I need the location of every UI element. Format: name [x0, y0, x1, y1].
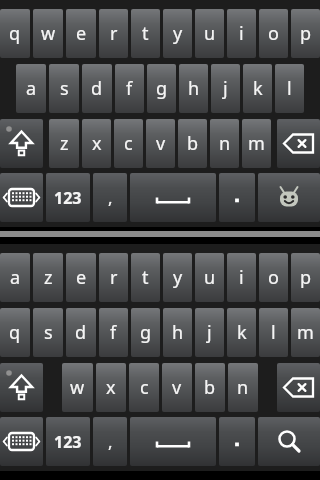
staticText: h: [188, 76, 200, 101]
staticText: y: [173, 265, 183, 290]
staticText: m: [248, 131, 265, 156]
button[interactable]: g: [131, 308, 160, 357]
button[interactable]: w: [62, 363, 93, 412]
button[interactable]: s: [33, 308, 63, 357]
button[interactable]: u: [195, 253, 224, 302]
button[interactable]: Shift: [0, 363, 43, 412]
button[interactable]: z: [49, 119, 79, 168]
button[interactable]: t: [131, 9, 160, 58]
button[interactable]: 123: [46, 173, 90, 222]
button[interactable]: ,: [93, 173, 127, 222]
button[interactable]: v: [146, 119, 175, 168]
staticText: d: [91, 76, 103, 101]
staticText: x: [106, 375, 116, 400]
button[interactable]: h: [179, 64, 208, 113]
staticText: 123: [54, 187, 82, 209]
button[interactable]: x: [82, 119, 111, 168]
staticText: a: [26, 76, 37, 101]
button[interactable]: y: [163, 253, 192, 302]
staticText: f: [126, 76, 133, 101]
button[interactable]: 123: [46, 417, 90, 466]
button[interactable]: c: [129, 363, 159, 412]
staticText: y: [173, 21, 183, 46]
button[interactable]: v: [162, 363, 192, 412]
button[interactable]: Emoji: [258, 173, 320, 222]
button[interactable]: e: [66, 253, 96, 302]
button[interactable]: o: [259, 253, 288, 302]
button[interactable]: m: [242, 119, 271, 168]
button[interactable]: n: [228, 363, 258, 412]
button[interactable]: d: [82, 64, 112, 113]
staticText: v: [172, 375, 182, 400]
staticText: p: [300, 265, 312, 290]
button[interactable]: k: [243, 64, 272, 113]
button[interactable]: q: [0, 308, 30, 357]
button[interactable]: b: [178, 119, 207, 168]
button[interactable]: l: [259, 308, 288, 357]
button[interactable]: Period: [219, 173, 255, 222]
button[interactable]: n: [210, 119, 239, 168]
staticText: e: [76, 265, 87, 290]
button[interactable]: Backspace: [277, 363, 320, 412]
staticText: o: [268, 265, 279, 290]
button[interactable]: s: [49, 64, 79, 113]
staticText: j: [207, 320, 212, 345]
button[interactable]: Period: [219, 417, 255, 466]
button[interactable]: o: [259, 9, 288, 58]
button[interactable]: m: [291, 308, 320, 357]
staticText: ,: [108, 430, 113, 453]
button[interactable]: i: [227, 9, 256, 58]
staticText: n: [237, 375, 249, 400]
button[interactable]: d: [66, 308, 96, 357]
button[interactable]: j: [195, 308, 224, 357]
button[interactable]: q: [0, 9, 30, 58]
button[interactable]: t: [131, 253, 160, 302]
button[interactable]: h: [163, 308, 192, 357]
button[interactable]: Space: [130, 417, 216, 466]
button[interactable]: z: [33, 253, 63, 302]
button[interactable]: Switch keyboard: [0, 173, 43, 222]
staticText: l: [271, 320, 276, 345]
button[interactable]: y: [163, 9, 192, 58]
button[interactable]: p: [291, 253, 320, 302]
button[interactable]: Search: [258, 417, 320, 466]
button[interactable]: w: [33, 9, 63, 58]
button[interactable]: x: [96, 363, 126, 412]
staticText: q: [9, 320, 21, 345]
button[interactable]: k: [227, 308, 256, 357]
button[interactable]: Shift: [0, 119, 43, 168]
staticText: o: [268, 21, 279, 46]
button[interactable]: j: [211, 64, 240, 113]
staticText: h: [172, 320, 184, 345]
button[interactable]: i: [227, 253, 256, 302]
button[interactable]: a: [0, 253, 30, 302]
staticText: m: [297, 320, 314, 345]
button[interactable]: r: [99, 253, 128, 302]
staticText: k: [253, 76, 263, 101]
button[interactable]: a: [16, 64, 46, 113]
button[interactable]: g: [147, 64, 176, 113]
staticText: x: [92, 131, 102, 156]
button[interactable]: u: [195, 9, 224, 58]
staticText: c: [140, 375, 149, 400]
staticText: r: [110, 265, 118, 290]
button[interactable]: l: [275, 64, 304, 113]
staticText: i: [239, 265, 244, 290]
button[interactable]: Switch keyboard: [0, 417, 43, 466]
button[interactable]: e: [66, 9, 96, 58]
staticText: t: [142, 265, 149, 290]
button[interactable]: ,: [93, 417, 127, 466]
staticText: w: [41, 21, 56, 46]
staticText: a: [10, 265, 21, 290]
button[interactable]: r: [99, 9, 128, 58]
button[interactable]: Backspace: [277, 119, 320, 168]
button[interactable]: c: [114, 119, 143, 168]
staticText: g: [140, 320, 152, 345]
staticText: u: [204, 21, 216, 46]
button[interactable]: b: [195, 363, 225, 412]
staticText: k: [237, 320, 247, 345]
button[interactable]: p: [291, 9, 320, 58]
button[interactable]: f: [99, 308, 128, 357]
button[interactable]: f: [115, 64, 144, 113]
button[interactable]: Space: [130, 173, 216, 222]
